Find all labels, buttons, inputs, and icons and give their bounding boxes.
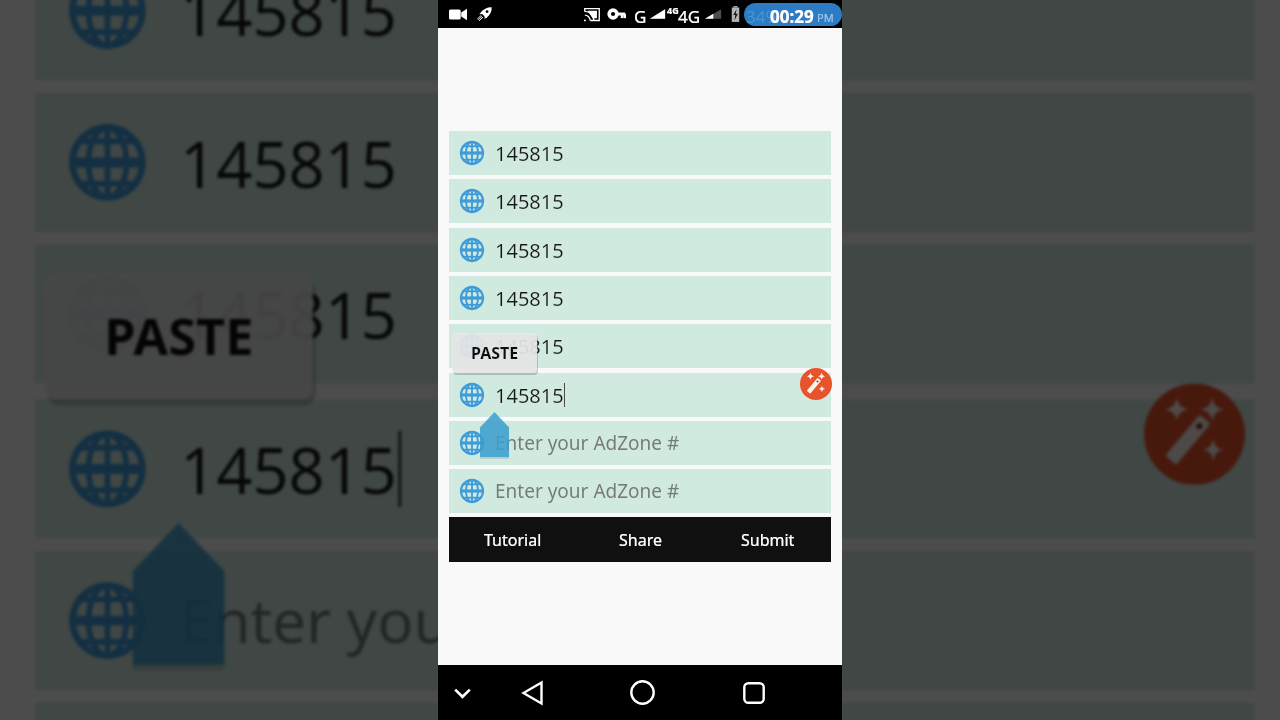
button[interactable]: Enter your AdZone # — [449, 421, 831, 465]
staticText: 145815 — [180, 121, 398, 207]
staticText: PM — [817, 10, 834, 25]
button[interactable]: Share — [577, 517, 704, 562]
button[interactable]: 145815 — [449, 276, 831, 320]
staticText: 145815 — [180, 273, 398, 358]
button[interactable]: Magic fill — [800, 368, 832, 400]
button[interactable]: Submit — [704, 517, 831, 562]
button[interactable]: Tutorial — [449, 517, 577, 562]
staticText: Submit — [741, 529, 795, 551]
button[interactable]: 145815 — [449, 131, 831, 175]
button[interactable]: 145815 — [449, 324, 831, 368]
staticText: 4G — [667, 4, 679, 16]
button[interactable]: 145815 — [449, 228, 831, 272]
staticText: 145815 — [180, 0, 398, 55]
button[interactable]: Hide keyboard — [442, 665, 482, 720]
staticText: Share — [619, 529, 662, 551]
staticText: 145815 — [495, 382, 564, 409]
staticText: 34% — [746, 5, 780, 28]
staticText: 145815 — [495, 140, 564, 167]
staticText: Tutorial — [484, 529, 542, 551]
staticText: Enter your AdZone # — [180, 579, 765, 662]
button[interactable]: PASTE — [452, 333, 537, 373]
button[interactable]: 145815 — [449, 373, 831, 417]
button[interactable]: Enter your AdZone # — [449, 469, 831, 513]
button[interactable]: Recent apps — [726, 665, 782, 720]
staticText: Enter your AdZone # — [495, 478, 680, 504]
staticText: 4G — [678, 5, 701, 28]
staticText: 145815 — [495, 285, 564, 312]
staticText: Enter your AdZone # — [495, 430, 680, 456]
staticText: 145815 — [180, 428, 398, 513]
staticText: 00:29 — [770, 5, 814, 28]
staticText: 145815 — [495, 237, 564, 264]
button[interactable]: 145815 — [449, 179, 831, 223]
staticText: G — [634, 5, 647, 28]
button[interactable]: Back — [504, 665, 560, 720]
staticText: PASTE — [471, 342, 519, 364]
button[interactable]: Home — [614, 665, 670, 720]
staticText: 145815 — [495, 188, 564, 215]
staticText: 145815 — [495, 333, 564, 360]
staticText: PASTE — [104, 301, 256, 371]
